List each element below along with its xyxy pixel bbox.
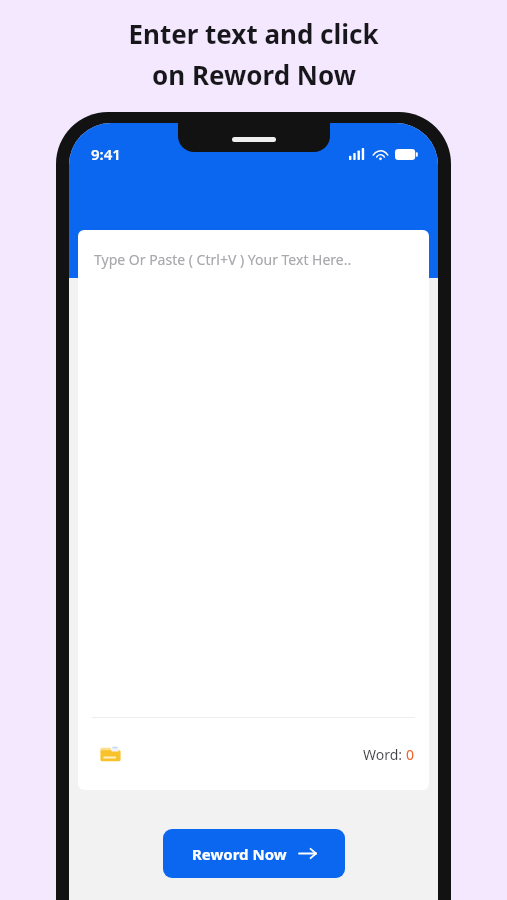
staticText: Reword Now (192, 844, 287, 864)
button[interactable]: Upload file (92, 736, 128, 772)
staticText: Type Or Paste ( Ctrl+V ) Your Text Here.… (94, 250, 352, 269)
staticText: 9:41 (91, 144, 121, 164)
staticText: on Reword Now (152, 57, 356, 92)
staticText: Rewording Tool (177, 229, 331, 256)
button[interactable]: Reword Now (163, 829, 345, 878)
button[interactable]: Type Or Paste ( Ctrl+V ) Your Text Here.… (78, 230, 429, 790)
staticText: 0 (406, 745, 415, 764)
staticText: Enter text and click (128, 16, 379, 51)
staticText: Word: (363, 745, 406, 764)
